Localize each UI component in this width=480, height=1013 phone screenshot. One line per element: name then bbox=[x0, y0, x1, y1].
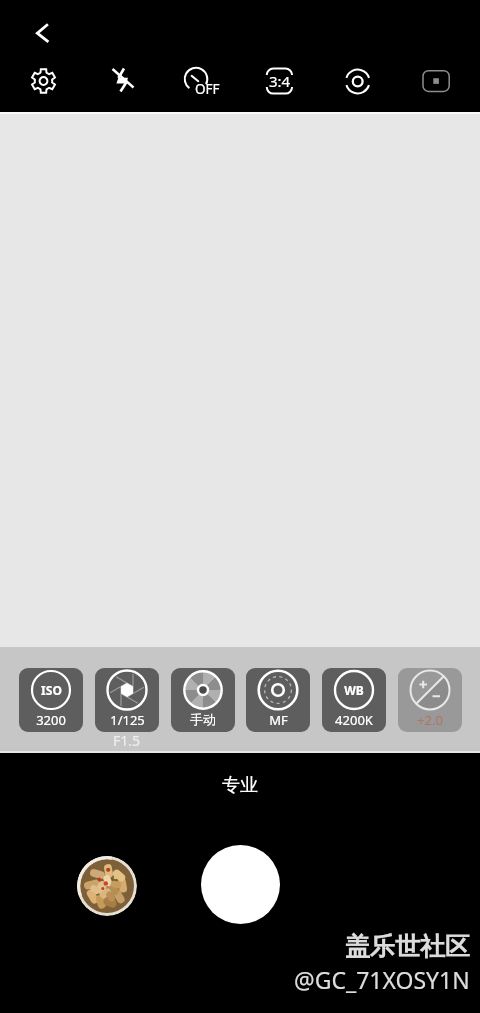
staticText: OFF bbox=[195, 80, 220, 98]
button[interactable]: WB bbox=[322, 668, 386, 732]
button[interactable]: Frame guide bbox=[400, 57, 480, 105]
button[interactable]: Gallery bbox=[77, 856, 137, 916]
staticText: 1/125 bbox=[110, 711, 145, 729]
button[interactable]: ISO bbox=[19, 668, 83, 732]
staticText: 专业 bbox=[222, 774, 258, 797]
button[interactable]: Flash off bbox=[80, 57, 160, 105]
button[interactable]: 1/125 bbox=[95, 668, 159, 732]
button[interactable]: 专业 bbox=[208, 772, 272, 799]
button[interactable]: Timer off bbox=[160, 57, 240, 105]
staticText: @GC_71XOSY1N bbox=[294, 964, 470, 995]
button[interactable]: Shutter bbox=[201, 845, 280, 924]
staticText: 4200K bbox=[335, 711, 373, 729]
staticText: 3:4 bbox=[269, 71, 291, 91]
button[interactable]: Back bbox=[22, 13, 62, 53]
staticText: +2.0 bbox=[417, 711, 443, 729]
button[interactable]: 手动 bbox=[171, 668, 235, 732]
button[interactable]: Focus mode bbox=[320, 57, 400, 105]
button[interactable]: +2.0 bbox=[398, 668, 462, 732]
staticText: 3200 bbox=[36, 711, 66, 729]
staticText: 手动 bbox=[190, 711, 216, 727]
staticText: F1.5 bbox=[113, 731, 141, 750]
staticText: MF bbox=[269, 711, 288, 729]
button[interactable]: Aspect ratio 3 to 4 bbox=[240, 57, 320, 105]
button[interactable]: MF bbox=[246, 668, 310, 732]
staticText: ISO bbox=[41, 682, 62, 698]
staticText: WB bbox=[344, 682, 364, 698]
staticText: 盖乐世社区 bbox=[345, 931, 470, 962]
button[interactable]: Settings bbox=[0, 57, 80, 105]
